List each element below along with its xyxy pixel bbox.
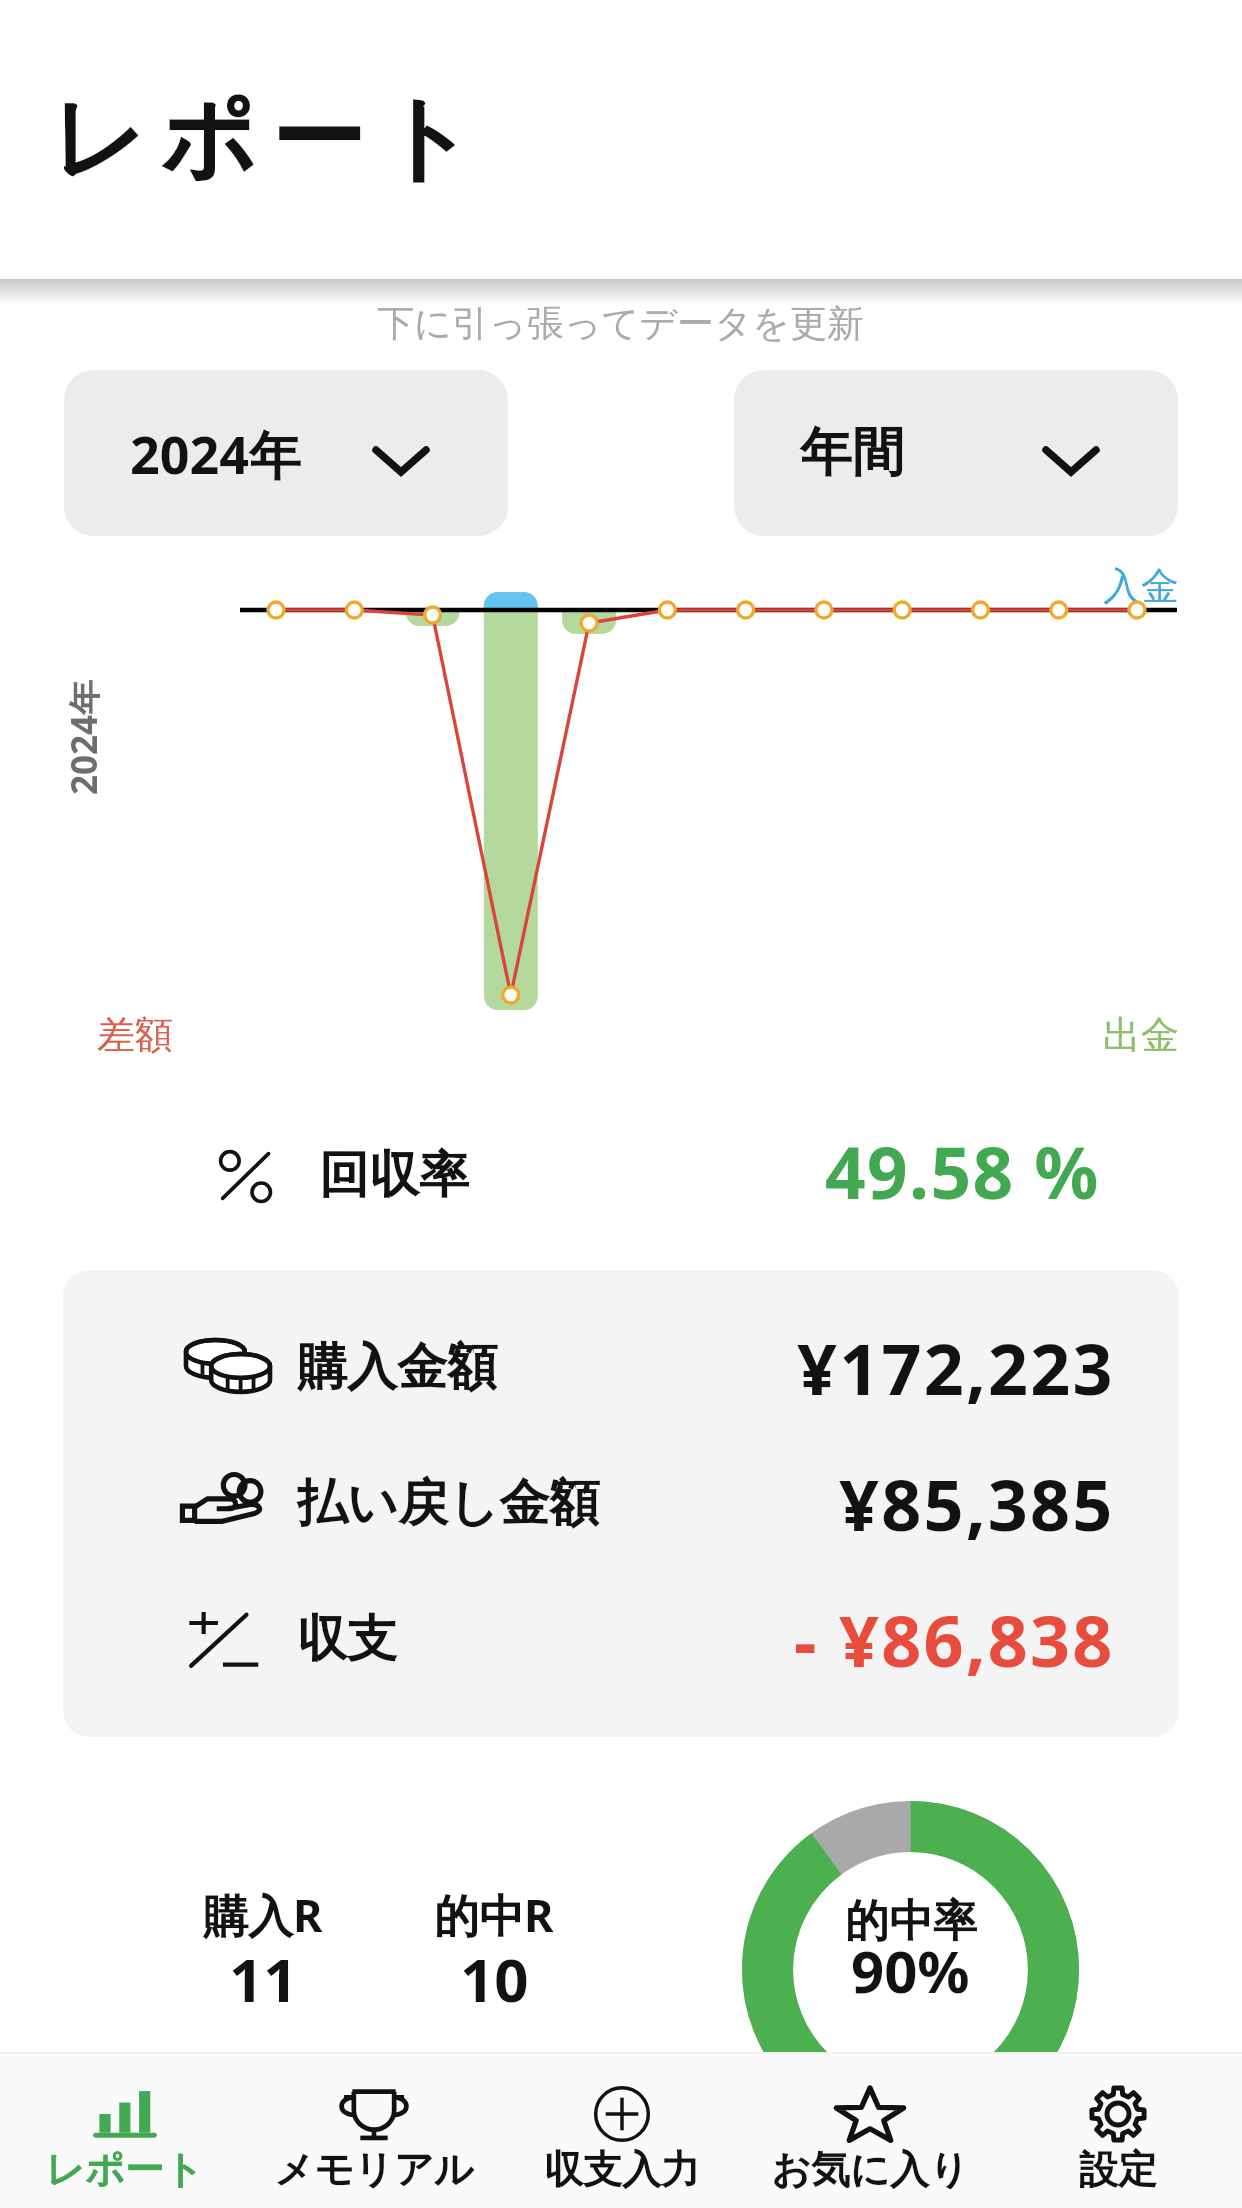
staticText: 収支入力 bbox=[544, 2145, 700, 2194]
staticText: 11 bbox=[229, 1938, 298, 2020]
staticText: お気に入り bbox=[771, 2145, 969, 2194]
button[interactable]: レポート bbox=[0, 2052, 249, 2208]
staticText: 的中R bbox=[434, 1884, 554, 1945]
staticText: 2024年 bbox=[60, 679, 100, 795]
button[interactable]: 払い戻し金額 bbox=[63, 1435, 1179, 1571]
staticText: 下に引っ張ってデータを更新 bbox=[377, 300, 865, 347]
button[interactable]: 購入金額 bbox=[63, 1299, 1179, 1435]
button[interactable]: 収支 bbox=[63, 1571, 1179, 1707]
staticText: 設定 bbox=[1079, 2145, 1157, 2194]
staticText: 入金 bbox=[1103, 562, 1179, 610]
staticText: 回収率 bbox=[319, 1144, 469, 1207]
button[interactable]: 2024年 bbox=[64, 370, 508, 536]
staticText: 的中率 bbox=[845, 1894, 977, 1949]
staticText: 49.58 % bbox=[825, 1123, 1100, 1220]
staticText: 出金 bbox=[1103, 1011, 1179, 1059]
staticText: 払い戻し金額 bbox=[297, 1472, 600, 1535]
button[interactable]: 収支入力 bbox=[498, 2052, 746, 2208]
staticText: 90% bbox=[851, 1931, 970, 2010]
staticText: 購入R bbox=[203, 1884, 323, 1945]
staticText: レポート bbox=[45, 2145, 204, 2194]
staticText: ¥85,385 bbox=[839, 1456, 1115, 1551]
button[interactable]: 設定 bbox=[994, 2052, 1242, 2208]
staticText: - ¥86,838 bbox=[794, 1592, 1115, 1687]
staticText: メモリアル bbox=[274, 2145, 474, 2194]
button[interactable]: 年間 bbox=[734, 370, 1178, 536]
staticText: 収支 bbox=[297, 1608, 397, 1671]
button[interactable]: 回収率 bbox=[63, 1126, 1179, 1238]
staticText: ¥172,223 bbox=[797, 1320, 1115, 1415]
staticText: レポート bbox=[50, 80, 489, 198]
button[interactable]: お気に入り bbox=[746, 2052, 994, 2208]
staticText: 購入金額 bbox=[297, 1336, 497, 1399]
staticText: 2024年 bbox=[130, 418, 301, 489]
button[interactable]: メモリアル bbox=[249, 2052, 498, 2208]
staticText: 年間 bbox=[800, 420, 904, 486]
staticText: 差額 bbox=[97, 1011, 173, 1059]
staticText: 10 bbox=[460, 1938, 529, 2020]
